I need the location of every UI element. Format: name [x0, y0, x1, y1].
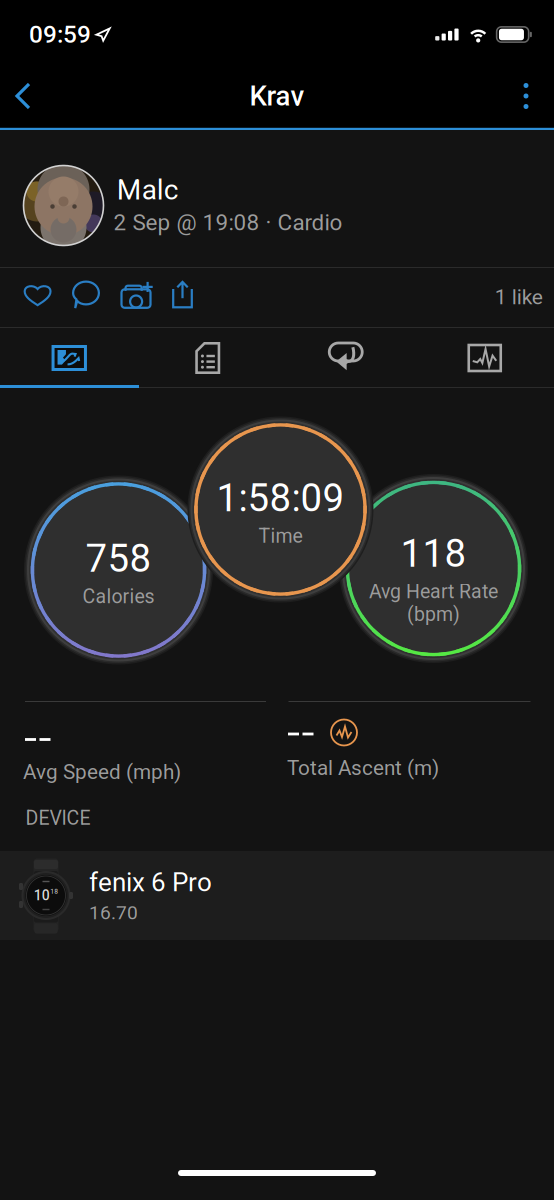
button[interactable]: More options [495, 62, 554, 129]
staticText: Avg Speed (mph) [23, 760, 181, 784]
button[interactable]: Back [0, 62, 52, 129]
staticText: (bpm) [407, 603, 460, 626]
staticText: 18 [50, 888, 58, 895]
button[interactable]: Comment [62, 275, 110, 315]
staticText: 1:58:09 [216, 476, 344, 521]
button[interactable]: Charts [415, 328, 554, 388]
staticText: Avg Heart Rate [369, 580, 498, 603]
staticText: 758 [85, 536, 151, 581]
staticText: Krav [249, 80, 304, 112]
staticText: 1 like [495, 285, 543, 309]
button[interactable]: Details [138, 328, 277, 388]
staticText: DEVICE [25, 807, 90, 829]
staticText: 09:59 [29, 20, 91, 49]
button[interactable]: Add photo [113, 275, 161, 315]
staticText: Malc [117, 174, 179, 206]
staticText: 10 [34, 887, 50, 904]
button[interactable]: 10 [0, 851, 554, 940]
staticText: 16.70 [89, 901, 138, 924]
staticText: fenix 6 Pro [89, 867, 212, 897]
staticText: Total Ascent (m) [287, 756, 439, 780]
button[interactable]: Share [158, 275, 206, 315]
button[interactable]: Laps [277, 328, 415, 388]
staticText: Time [258, 525, 302, 547]
staticText: 118 [400, 531, 466, 576]
button[interactable]: Like [14, 275, 62, 315]
button[interactable]: Map [0, 328, 138, 388]
staticText: Calories [82, 585, 154, 608]
staticText: 2 Sep @ 19:08 · Cardio [113, 209, 342, 236]
